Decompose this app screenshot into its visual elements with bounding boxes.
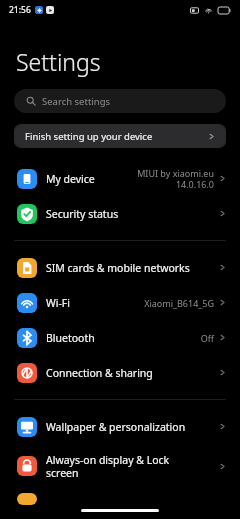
button[interactable]: Wallpaper & personalization bbox=[0, 409, 240, 444]
staticText: SIM cards & mobile networks bbox=[46, 261, 214, 275]
staticText: 21:56 bbox=[9, 4, 31, 16]
button[interactable]: Wi-Fi bbox=[0, 285, 240, 320]
staticText: Finish setting up your device bbox=[25, 130, 153, 143]
staticText: Search settings bbox=[42, 95, 111, 108]
button[interactable]: My device bbox=[0, 161, 240, 196]
staticText: My device bbox=[46, 172, 133, 186]
staticText: Always-on display & Lock screen bbox=[46, 453, 214, 480]
staticText: Settings bbox=[16, 46, 101, 77]
button[interactable]: Connection & sharing bbox=[0, 355, 240, 390]
staticText: Wallpaper & personalization bbox=[46, 420, 214, 434]
other: Screenshot bbox=[190, 6, 199, 15]
button[interactable]: Search settings bbox=[14, 89, 226, 113]
staticText: MIUI by xiaomi.eu 14.0.16.0 bbox=[137, 167, 214, 190]
other: Media notification bbox=[46, 6, 54, 14]
other: Battery bbox=[218, 7, 231, 14]
button[interactable]: Finish setting up your device bbox=[14, 124, 226, 148]
button[interactable]: Always-on display & Lock screen bbox=[0, 444, 240, 488]
other: App notification bbox=[35, 6, 43, 14]
staticText: Xiaomi_B614_5G bbox=[144, 297, 214, 309]
button[interactable]: Bluetooth bbox=[0, 320, 240, 355]
staticText: Bluetooth bbox=[46, 331, 196, 345]
staticText: Off bbox=[200, 332, 214, 344]
staticText: Wi-Fi bbox=[46, 296, 140, 310]
staticText: Connection & sharing bbox=[46, 366, 214, 380]
button[interactable]: SIM cards & mobile networks bbox=[0, 250, 240, 285]
staticText: Security status bbox=[46, 207, 214, 221]
other: Wi-Fi signal bbox=[204, 6, 213, 15]
button[interactable]: Security status bbox=[0, 196, 240, 231]
